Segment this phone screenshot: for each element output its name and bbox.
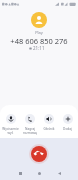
button[interactable]: Nagraj rozmowę bbox=[20, 105, 39, 135]
button[interactable]: End call bbox=[29, 144, 49, 164]
staticText: Dodaj bbox=[63, 127, 72, 131]
staticText: Nagraj rozmowę bbox=[23, 127, 37, 135]
staticText: 21:11 bbox=[33, 45, 45, 51]
staticText: Wyciszenie wył. bbox=[2, 127, 19, 135]
button[interactable]: Wyciszenie wył. bbox=[1, 105, 20, 135]
staticText: +48 606 850 276 bbox=[10, 36, 68, 46]
button[interactable]: Home bbox=[34, 168, 44, 178]
staticText: Głośnik bbox=[43, 127, 55, 131]
button[interactable]: Głośnik bbox=[39, 105, 58, 131]
staticText: Play bbox=[35, 30, 43, 35]
button[interactable]: Back bbox=[54, 168, 64, 178]
button[interactable]: Recents bbox=[15, 168, 25, 178]
button[interactable]: Dodaj bbox=[58, 105, 77, 131]
